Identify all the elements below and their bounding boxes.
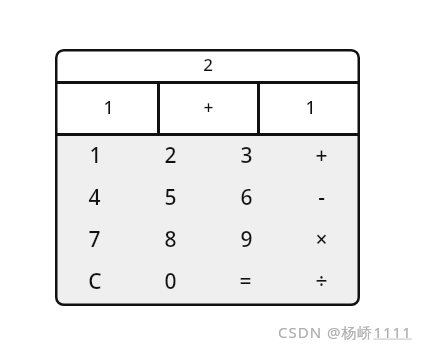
button[interactable]: 2: [131, 136, 207, 178]
staticText: =: [239, 267, 252, 296]
button[interactable]: 7: [56, 220, 131, 262]
staticText: 7: [88, 225, 101, 254]
staticText: 6: [240, 183, 253, 212]
button[interactable]: 0: [131, 262, 207, 304]
staticText: 1: [89, 141, 102, 170]
button[interactable]: Divide: [283, 262, 359, 304]
staticText: ÷: [315, 267, 328, 296]
staticText: 5: [164, 183, 177, 212]
staticText: +: [315, 141, 328, 170]
staticText: 1: [103, 95, 114, 119]
button[interactable]: 6: [207, 178, 283, 220]
staticText: +: [203, 95, 214, 119]
button[interactable]: Equals: [207, 262, 283, 304]
button[interactable]: 1: [56, 136, 131, 178]
staticText: 4: [88, 183, 101, 212]
button[interactable]: 9: [207, 220, 283, 262]
button[interactable]: Minus: [283, 178, 359, 220]
staticText: 0: [164, 267, 177, 296]
button[interactable]: 3: [207, 136, 283, 178]
button[interactable]: Plus: [160, 84, 257, 133]
staticText: 9: [240, 225, 253, 254]
button[interactable]: Plus: [283, 136, 359, 178]
button[interactable]: 1: [260, 84, 359, 133]
button[interactable]: 4: [56, 178, 131, 220]
button[interactable]: 5: [131, 178, 207, 220]
staticText: 2: [164, 141, 177, 170]
staticText: 2: [203, 53, 213, 76]
staticText: -: [318, 183, 325, 212]
staticText: CSDN @杨峤1111: [278, 322, 412, 342]
button[interactable]: Result 2: [55, 49, 360, 81]
staticText: ×: [315, 225, 328, 254]
button[interactable]: Clear: [56, 262, 131, 304]
staticText: C: [88, 267, 102, 296]
staticText: 3: [240, 141, 253, 170]
button[interactable]: 8: [131, 220, 207, 262]
button[interactable]: 1: [56, 84, 157, 133]
staticText: 8: [164, 225, 177, 254]
staticText: 1: [305, 95, 316, 119]
button[interactable]: Multiply: [283, 220, 359, 262]
